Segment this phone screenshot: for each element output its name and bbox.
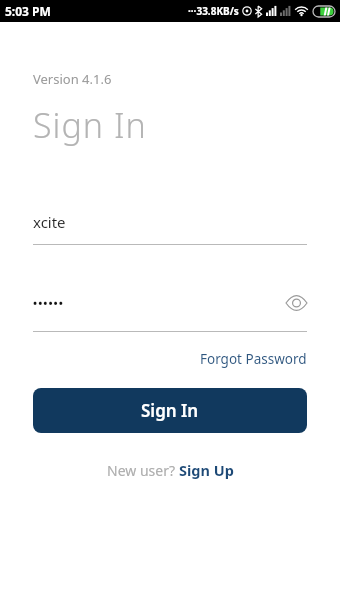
staticText: ···33.8KB/s xyxy=(188,4,239,18)
staticText: Sign In xyxy=(33,102,147,148)
staticText: xcite xyxy=(33,212,66,232)
staticText: •••••• xyxy=(33,295,64,310)
staticText: 5:03 PM xyxy=(5,3,51,19)
button[interactable]: Sign Up xyxy=(179,460,234,480)
staticText: Sign In xyxy=(141,399,199,422)
button[interactable] xyxy=(286,296,307,310)
button[interactable]: Sign In xyxy=(33,388,307,433)
staticText: New user? xyxy=(107,461,179,480)
button[interactable]: Forgot Password xyxy=(200,350,307,368)
staticText: Version 4.1.6 xyxy=(33,70,112,88)
